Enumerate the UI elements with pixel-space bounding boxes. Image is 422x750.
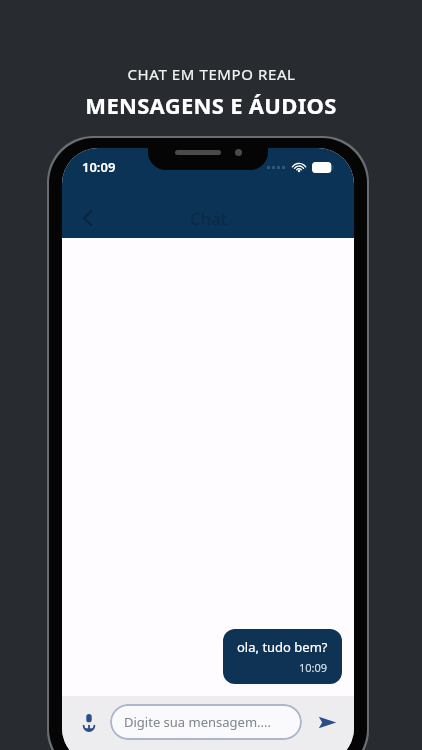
button[interactable]: Back (70, 200, 106, 236)
staticText: MENSAGENS E ÁUDIOS (85, 90, 337, 120)
staticText: ola, tudo bem? (237, 638, 328, 656)
button[interactable]: Record audio (72, 705, 106, 739)
staticText: Chat (190, 207, 227, 230)
staticText: CHAT EM TEMPO REAL (127, 64, 296, 84)
staticText: 10:09 (82, 158, 116, 176)
staticText: Digite sua mensagem.... (124, 713, 271, 731)
button[interactable]: ola, tudo bem? (223, 629, 342, 684)
staticText: 10:09 (299, 660, 328, 675)
button[interactable]: Send (310, 705, 344, 739)
button[interactable]: Digite sua mensagem.... (110, 704, 302, 740)
